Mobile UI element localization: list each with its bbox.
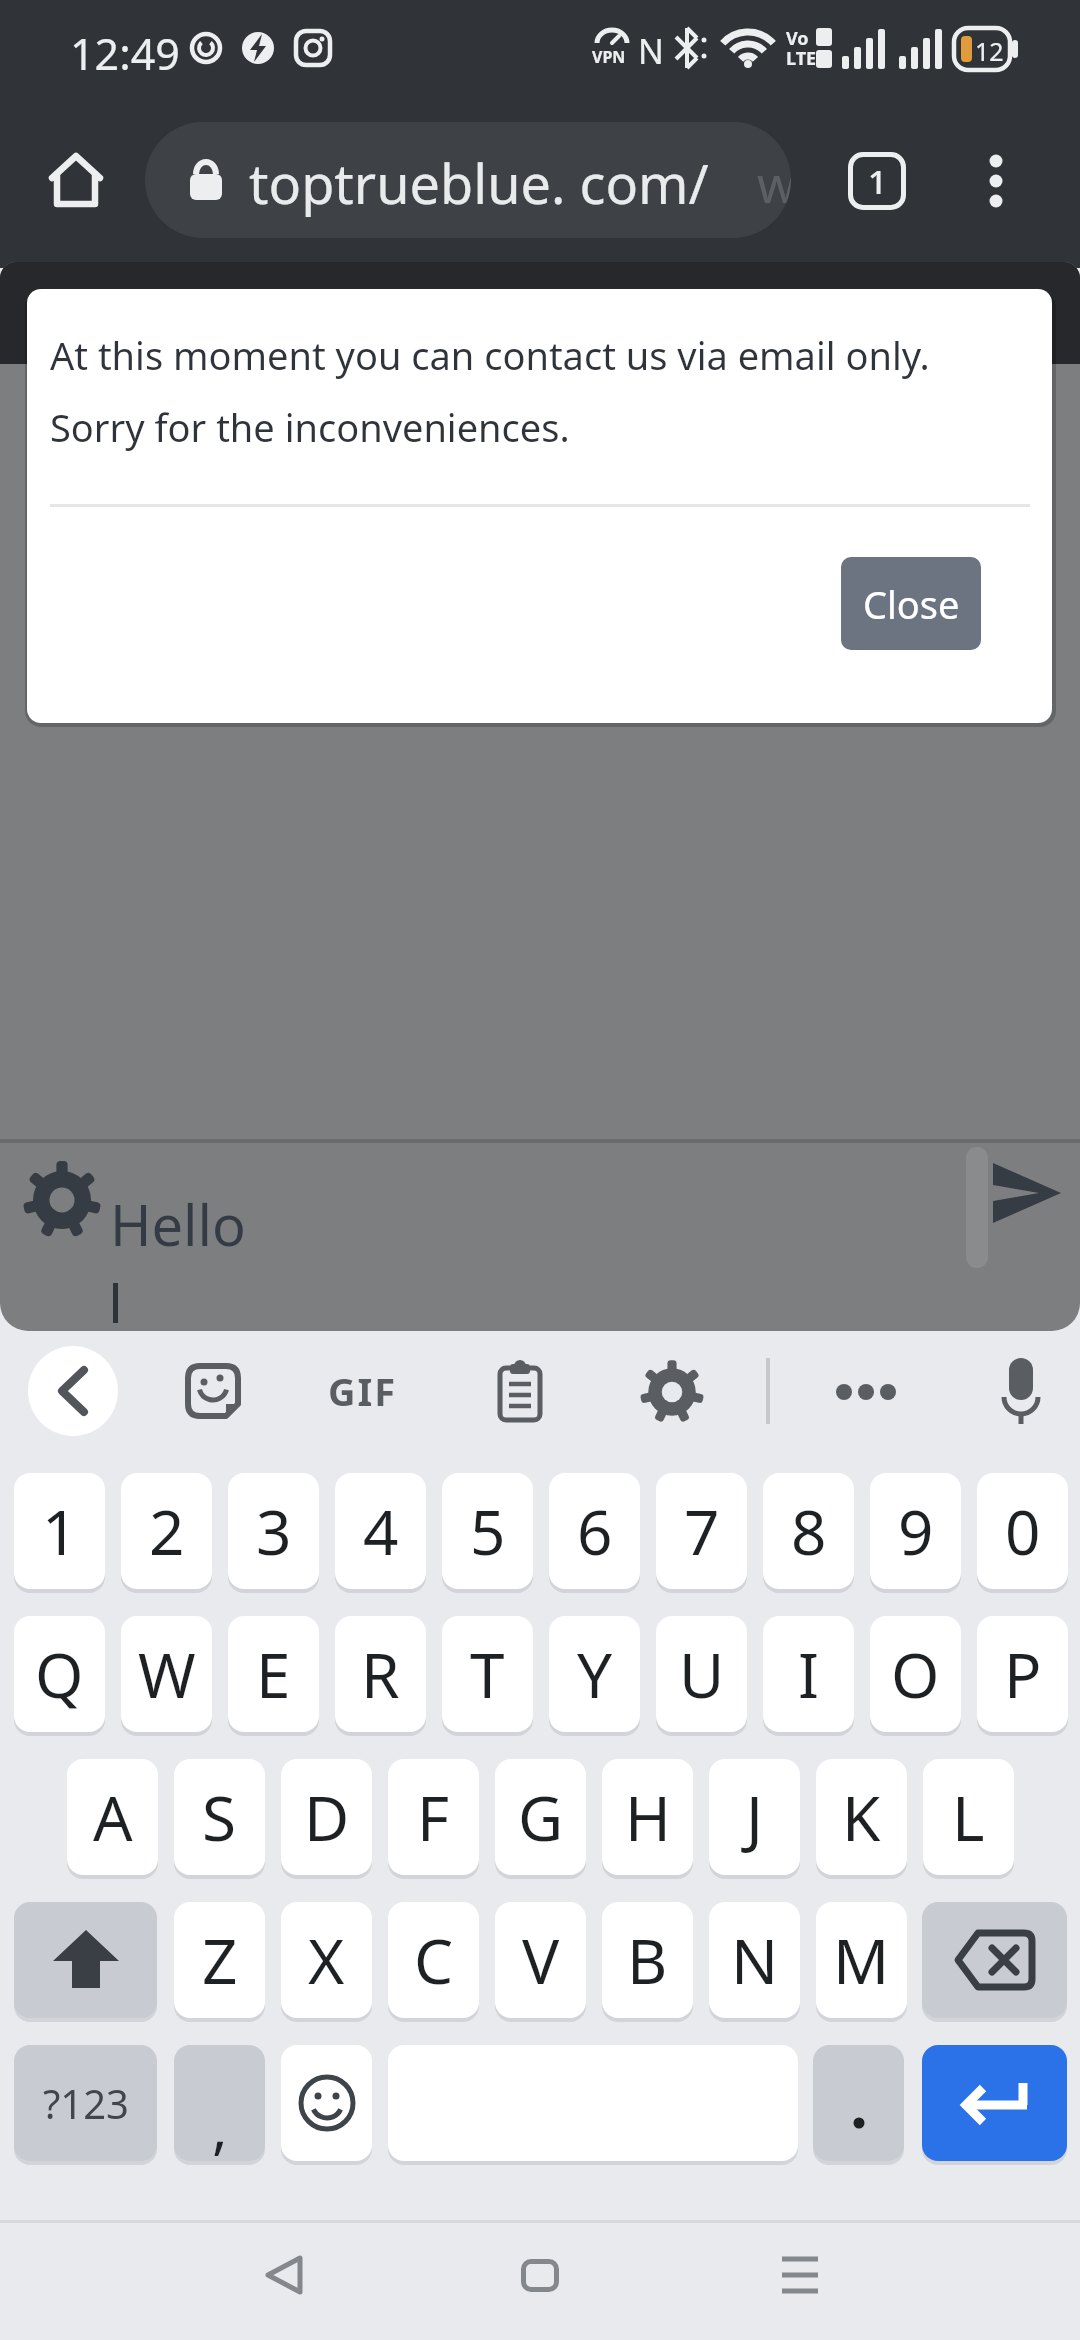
staticText: O [891,1632,940,1716]
button[interactable]: Q [14,1616,105,1732]
button[interactable] [993,1163,1063,1225]
button[interactable]: 0 [977,1473,1068,1589]
staticText: Vo [786,26,809,51]
button[interactable]: G [495,1759,586,1875]
staticText: E [256,1632,291,1716]
staticText: Q [35,1632,84,1716]
button[interactable]: 6 [549,1473,640,1589]
staticText: W [138,1632,196,1716]
staticText: J [746,1775,763,1859]
staticText: H [625,1775,671,1859]
button[interactable] [240,2230,330,2320]
button[interactable]: GIF [318,1352,408,1430]
button[interactable]: M [816,1902,907,2018]
button[interactable] [498,1360,542,1422]
button[interactable] [28,1346,118,1436]
button[interactable]: H [602,1759,693,1875]
button[interactable] [822,1360,910,1424]
button[interactable]: K [816,1759,907,1875]
button[interactable]: 7 [656,1473,747,1589]
staticText: 9 [898,1489,934,1573]
button[interactable]: J [709,1759,800,1875]
button[interactable]: toptrueblue. com/ [145,122,791,238]
staticText: 4 [363,1489,399,1573]
staticText: R [361,1632,400,1716]
staticText: 7 [684,1489,720,1573]
staticText: 6 [577,1489,613,1573]
button[interactable]: V [495,1902,586,2018]
button[interactable]: 1 [14,1473,105,1589]
staticText: L [952,1775,985,1859]
staticText: N [731,1918,779,2002]
button[interactable] [186,1364,242,1420]
button[interactable]: I [763,1616,854,1732]
staticText: GIF [328,1365,398,1417]
button[interactable]: F [388,1759,479,1875]
button[interactable]: D [281,1759,372,1875]
button[interactable] [813,2045,904,2161]
button[interactable]: B [602,1902,693,2018]
button[interactable]: U [656,1616,747,1732]
staticText: K [842,1775,881,1859]
button[interactable]: Close [841,557,981,650]
button[interactable]: 9 [870,1473,961,1589]
staticText: S [202,1775,237,1859]
staticText: Close [863,578,960,630]
button[interactable]: W [121,1616,212,1732]
button[interactable] [922,2045,1067,2161]
button[interactable]: A [67,1759,158,1875]
button[interactable]: C [388,1902,479,2018]
button[interactable] [644,1364,700,1420]
button[interactable]: 5 [442,1473,533,1589]
button[interactable]: N [709,1902,800,2018]
staticText: , [212,2086,228,2161]
staticText: C [414,1918,454,2002]
staticText: M [833,1918,890,2002]
staticText: 0 [1005,1489,1041,1573]
button[interactable]: X [281,1902,372,2018]
staticText: I [798,1632,820,1716]
staticText: D [304,1775,350,1859]
button[interactable]: 4 [335,1473,426,1589]
staticText: U [679,1632,725,1716]
button[interactable]: T [442,1616,533,1732]
button[interactable] [14,1902,157,2018]
staticText: 5 [470,1489,506,1573]
button[interactable]: E [228,1616,319,1732]
staticText: Z [202,1918,238,2002]
staticText: 1 [42,1489,78,1573]
button[interactable] [998,1358,1044,1426]
button[interactable] [966,150,1026,212]
button[interactable]: L [923,1759,1014,1875]
button[interactable]: 8 [763,1473,854,1589]
button[interactable]: 2 [121,1473,212,1589]
button[interactable]: O [870,1616,961,1732]
staticText: A [93,1775,133,1859]
staticText: G [518,1775,564,1859]
button[interactable] [922,1902,1067,2018]
button[interactable] [495,2230,585,2320]
staticText: 1 [868,159,887,204]
staticText: 2 [149,1489,185,1573]
button[interactable]: S [174,1759,265,1875]
button[interactable]: Y [549,1616,640,1732]
staticText: LTE [786,46,817,71]
button[interactable]: P [977,1616,1068,1732]
staticText: T [470,1632,505,1716]
staticText: Y [577,1632,613,1716]
button[interactable]: R [335,1616,426,1732]
staticText: 3 [256,1489,292,1573]
button[interactable] [755,2230,845,2320]
button[interactable]: Z [174,1902,265,2018]
button[interactable] [281,2045,372,2161]
button[interactable]: ?123 [14,2045,157,2161]
button[interactable]: 1 [848,152,906,210]
staticText: F [417,1775,450,1859]
button[interactable] [40,144,112,216]
staticText: w [757,150,791,218]
button[interactable]: 3 [228,1473,319,1589]
staticText: At this moment you can contact us via em… [50,329,930,381]
staticText: N [638,28,664,74]
button[interactable]: , [174,2045,265,2161]
